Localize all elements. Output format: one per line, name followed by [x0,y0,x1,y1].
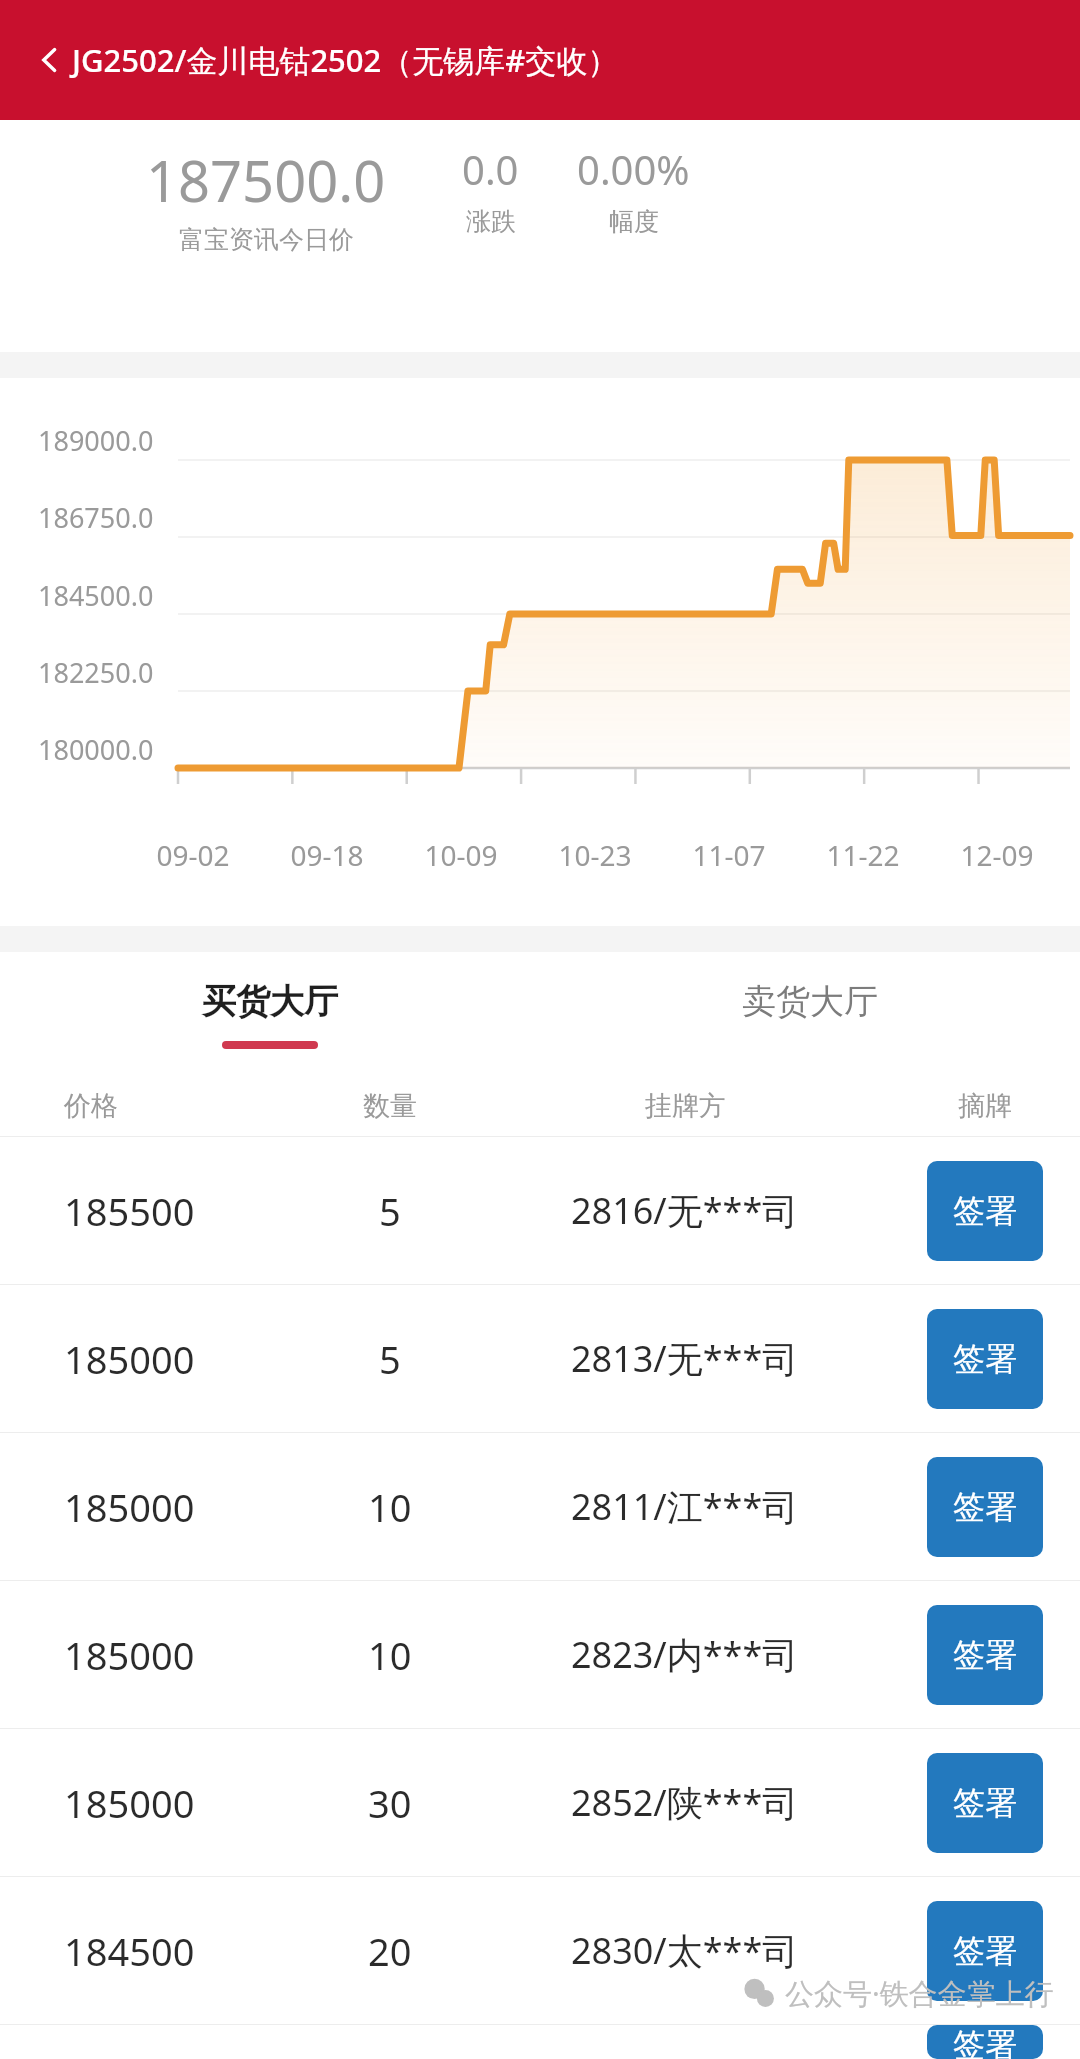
staticText: 2830/太***司 [571,1926,799,1975]
staticText: 价格 [64,1089,118,1123]
staticText: 10-09 [424,836,498,874]
staticText: 185500 [64,1185,195,1237]
staticText: 公众号·铁合金掌上行 [785,1973,1054,2013]
staticText: 5 [379,1333,401,1385]
staticText: 11-07 [692,836,766,874]
staticText: 185000 [64,1333,195,1385]
staticText: 5 [379,1185,401,1237]
staticText: 0.0 [462,142,519,196]
staticText: 184500 [64,1925,195,1977]
staticText: 187500.0 [146,142,386,218]
button[interactable]: 签署 [927,1901,1043,2001]
staticText: 189000.0 [38,422,154,459]
button[interactable]: 签署 [927,1605,1043,1705]
staticText: 涨跌 [466,206,516,237]
staticText: 买货大厅 [202,980,338,1023]
staticText: 2823/内***司 [571,1630,799,1679]
staticText: 185000 [64,1629,195,1681]
staticText: 签署 [953,1635,1017,1675]
staticText: 数量 [363,1089,417,1123]
staticText: 2811/江***司 [571,1482,799,1531]
staticText: 2813/无***司 [571,1334,799,1383]
staticText: 2852/陕***司 [571,1778,799,1827]
staticText: 12-09 [960,836,1034,874]
staticText: 签署 [953,1339,1017,1379]
staticText: 20 [368,1925,412,1977]
button[interactable]: Back [28,38,72,82]
button[interactable]: 签署 [927,1309,1043,1409]
staticText: 11-22 [826,836,900,874]
staticText: 卖货大厅 [742,980,878,1023]
staticText: 签署 [953,1487,1017,1527]
button[interactable]: 签署 [927,1161,1043,1261]
button[interactable]: 签署 [927,2025,1043,2059]
staticText: 10 [368,1629,412,1681]
staticText: 09-18 [290,836,364,874]
staticText: 签署 [953,1191,1017,1231]
staticText: JG2502/金川电钴2502（无锡库#交收） [72,39,619,81]
staticText: 富宝资讯今日价 [179,224,354,255]
staticText: 09-02 [156,836,230,874]
button[interactable]: 卖货大厅 [540,952,1080,1076]
staticText: 186750.0 [38,499,154,536]
staticText: 2816/无***司 [571,1186,799,1235]
staticText: 签署 [953,1931,1017,1971]
button[interactable]: 签署 [927,1457,1043,1557]
button[interactable]: 签署 [927,1753,1043,1853]
staticText: 0.00% [577,142,690,196]
staticText: 签署 [953,1783,1017,1823]
staticText: 182250.0 [38,654,154,691]
staticText: 184500.0 [38,577,154,614]
staticText: 185000 [64,1481,195,1533]
staticText: 185000 [64,1777,195,1829]
staticText: 挂牌方 [645,1089,726,1123]
staticText: 摘牌 [958,1089,1012,1123]
staticText: 10-23 [558,836,632,874]
button[interactable]: 买货大厅 [0,952,540,1076]
staticText: 幅度 [609,206,659,237]
staticText: 10 [368,1481,412,1533]
staticText: 签署 [953,2025,1017,2059]
staticText: 30 [368,1777,412,1829]
staticText: 180000.0 [38,731,154,768]
